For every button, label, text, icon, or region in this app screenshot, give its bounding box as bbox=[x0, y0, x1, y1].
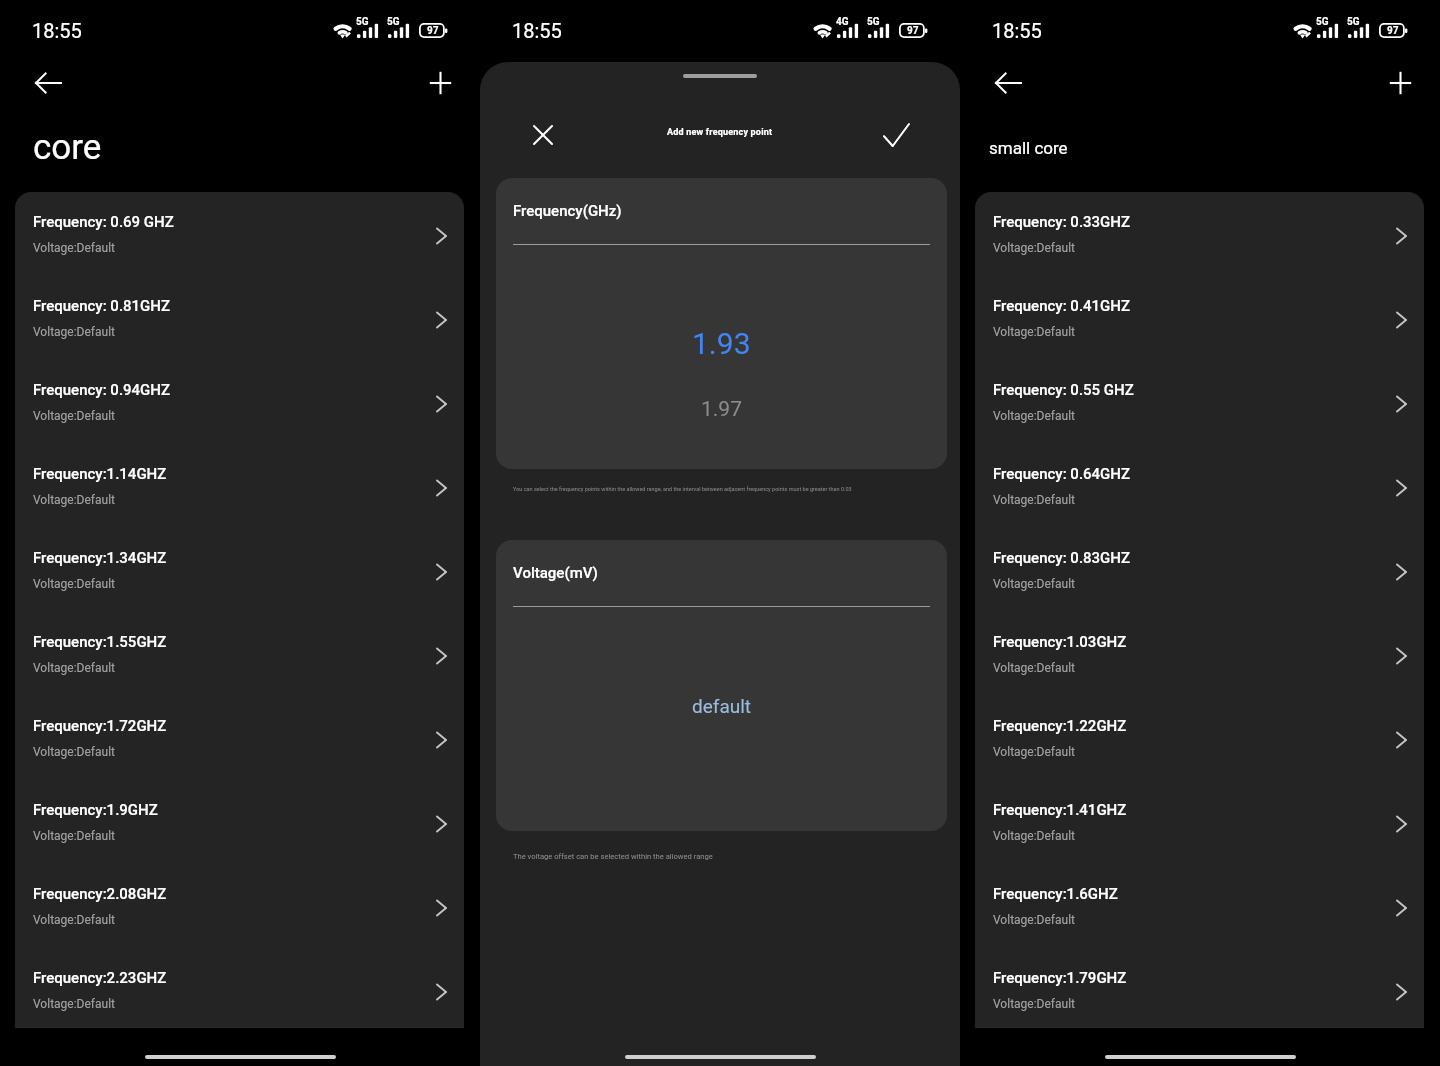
staticText: Frequency:2.23GHZ bbox=[33, 969, 167, 987]
button[interactable]: Frequency:1.22GHZ bbox=[975, 696, 1424, 780]
staticText: Voltage:Default bbox=[33, 745, 115, 759]
staticText: 4G bbox=[836, 16, 849, 28]
staticText: Frequency:1.41GHZ bbox=[993, 801, 1127, 819]
staticText: default bbox=[692, 695, 752, 717]
staticText: Voltage:Default bbox=[993, 493, 1075, 507]
staticText: Voltage:Default bbox=[33, 661, 115, 675]
staticText: small core bbox=[989, 138, 1068, 158]
button[interactable]: Frequency:1.55GHZ bbox=[15, 612, 464, 696]
staticText: Frequency:2.08GHZ bbox=[33, 885, 167, 903]
staticText: Frequency: 0.81GHZ bbox=[33, 297, 171, 315]
staticText: Voltage:Default bbox=[33, 829, 115, 843]
staticText: Frequency:1.72GHZ bbox=[33, 717, 167, 735]
staticText: Frequency:1.9GHZ bbox=[33, 801, 158, 819]
staticText: You can select the frequency points with… bbox=[513, 486, 852, 492]
staticText: Voltage:Default bbox=[993, 829, 1075, 843]
staticText: Voltage:Default bbox=[993, 661, 1075, 675]
staticText: Voltage:Default bbox=[993, 325, 1075, 339]
staticText: 5G bbox=[356, 16, 369, 28]
button[interactable]: Frequency: 0.83GHZ bbox=[975, 528, 1424, 612]
button[interactable]: Confirm bbox=[878, 115, 914, 155]
staticText: Frequency: 0.55 GHZ bbox=[993, 381, 1134, 399]
staticText: 5G bbox=[867, 16, 880, 28]
button[interactable]: Frequency:1.41GHZ bbox=[975, 780, 1424, 864]
staticText: Voltage:Default bbox=[33, 577, 115, 591]
staticText: Frequency:1.6GHZ bbox=[993, 885, 1118, 903]
staticText: Voltage:Default bbox=[993, 577, 1075, 591]
button[interactable]: Frequency: 0.81GHZ bbox=[15, 276, 464, 360]
staticText: Voltage:Default bbox=[993, 409, 1075, 423]
button[interactable]: Frequency:1.6GHZ bbox=[975, 864, 1424, 948]
button[interactable]: Frequency:1.72GHZ bbox=[15, 696, 464, 780]
staticText: Voltage:Default bbox=[993, 745, 1075, 759]
button[interactable]: Frequency: 0.55 GHZ bbox=[975, 360, 1424, 444]
button[interactable]: Frequency:2.23GHZ bbox=[15, 948, 464, 1028]
staticText: 1.93 bbox=[692, 326, 751, 361]
staticText: The voltage offset can be selected withi… bbox=[513, 852, 713, 861]
staticText: 97 bbox=[907, 25, 919, 37]
staticText: Frequency:1.14GHZ bbox=[33, 465, 167, 483]
button[interactable]: Frequency: 0.33GHZ bbox=[975, 192, 1424, 276]
staticText: Frequency:1.22GHZ bbox=[993, 717, 1127, 735]
staticText: Frequency: 0.41GHZ bbox=[993, 297, 1131, 315]
staticText: Voltage:Default bbox=[33, 913, 115, 927]
staticText: 18:55 bbox=[992, 19, 1042, 42]
button[interactable]: Frequency: 0.64GHZ bbox=[975, 444, 1424, 528]
staticText: 97 bbox=[1387, 25, 1399, 37]
button[interactable]: Frequency:1.03GHZ bbox=[975, 612, 1424, 696]
button[interactable]: Add frequency point bbox=[419, 65, 461, 101]
staticText: 97 bbox=[427, 25, 439, 37]
staticText: Voltage:Default bbox=[33, 325, 115, 339]
button[interactable]: Frequency: 0.94GHZ bbox=[15, 360, 464, 444]
staticText: Voltage:Default bbox=[33, 493, 115, 507]
staticText: core bbox=[33, 127, 102, 168]
staticText: 5G bbox=[1316, 16, 1329, 28]
button[interactable]: Back bbox=[28, 65, 68, 101]
button[interactable]: Frequency:2.08GHZ bbox=[15, 864, 464, 948]
staticText: Voltage:Default bbox=[33, 241, 115, 255]
staticText: Frequency: 0.64GHZ bbox=[993, 465, 1131, 483]
staticText: Frequency: 0.69 GHZ bbox=[33, 213, 174, 231]
button[interactable]: Add frequency point bbox=[1379, 65, 1421, 101]
button[interactable]: Frequency:1.9GHZ bbox=[15, 780, 464, 864]
button[interactable]: Frequency:1.14GHZ bbox=[15, 444, 464, 528]
staticText: Frequency:1.79GHZ bbox=[993, 969, 1127, 987]
staticText: 18:55 bbox=[32, 19, 82, 42]
staticText: Frequency:1.03GHZ bbox=[993, 633, 1127, 651]
button[interactable]: Frequency:1.79GHZ bbox=[975, 948, 1424, 1028]
staticText: 18:55 bbox=[512, 19, 562, 42]
staticText: Voltage:Default bbox=[993, 997, 1075, 1011]
staticText: Voltage:Default bbox=[33, 409, 115, 423]
button[interactable]: Close bbox=[525, 117, 561, 153]
button[interactable]: Frequency: 0.41GHZ bbox=[975, 276, 1424, 360]
button[interactable]: Frequency: 0.69 GHZ bbox=[15, 192, 464, 276]
staticText: Voltage:Default bbox=[33, 997, 115, 1011]
staticText: Frequency: 0.83GHZ bbox=[993, 549, 1131, 567]
staticText: Voltage:Default bbox=[993, 913, 1075, 927]
staticText: Frequency(GHz) bbox=[513, 202, 622, 220]
button[interactable]: Frequency:1.34GHZ bbox=[15, 528, 464, 612]
staticText: Frequency:1.55GHZ bbox=[33, 633, 167, 651]
staticText: Voltage(mV) bbox=[513, 564, 598, 582]
staticText: 5G bbox=[387, 16, 400, 28]
staticText: Add new frequency point bbox=[667, 127, 773, 138]
staticText: Frequency: 0.33GHZ bbox=[993, 213, 1131, 231]
staticText: Frequency: 0.94GHZ bbox=[33, 381, 171, 399]
staticText: 1.97 bbox=[701, 397, 742, 422]
staticText: Voltage:Default bbox=[993, 241, 1075, 255]
staticText: 5G bbox=[1347, 16, 1360, 28]
staticText: Frequency:1.34GHZ bbox=[33, 549, 167, 567]
button[interactable]: Back bbox=[988, 65, 1028, 101]
